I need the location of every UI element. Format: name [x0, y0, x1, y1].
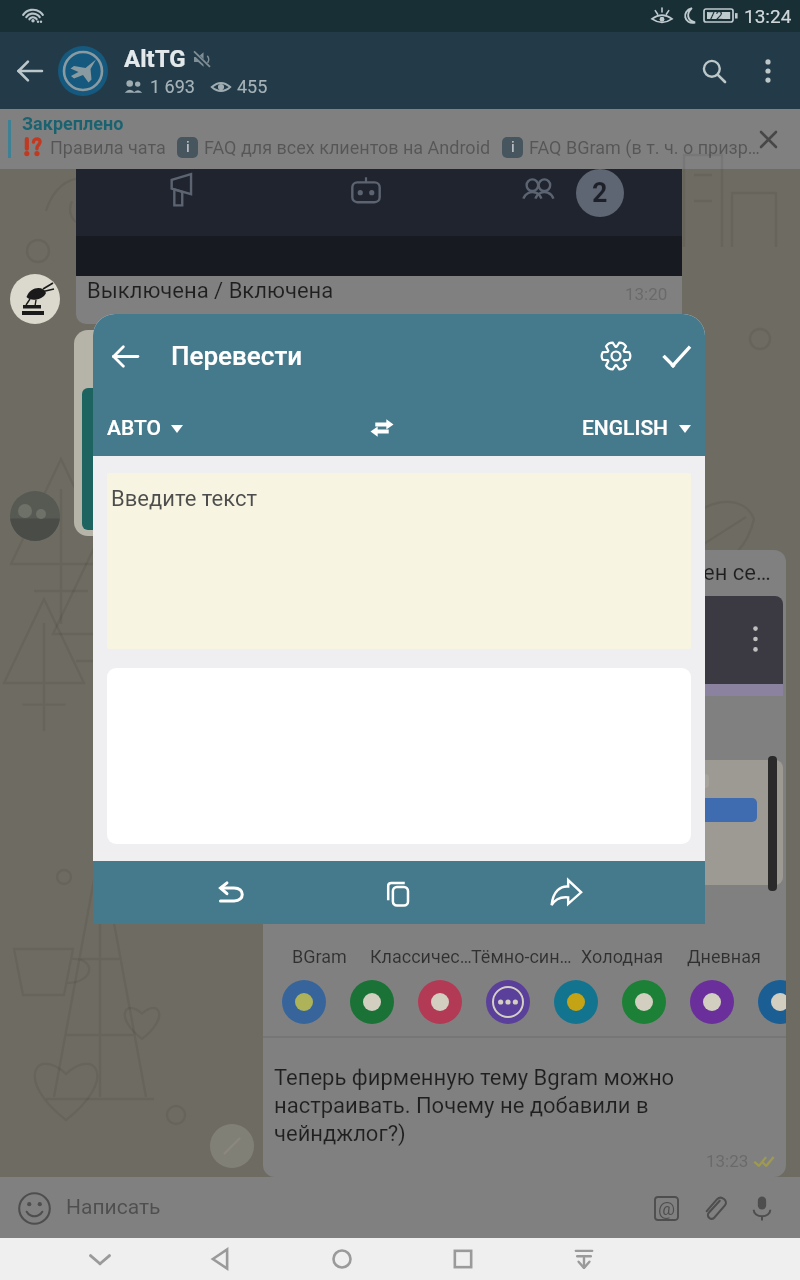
button[interactable]: Settings [592, 332, 640, 380]
button[interactable]: Collapse [523, 1238, 644, 1280]
staticText: 13:23 [706, 1151, 749, 1171]
staticText: AltTG [124, 45, 186, 73]
staticText: Закреплено [22, 113, 124, 134]
button[interactable]: Recents [402, 1238, 523, 1280]
staticText: i [186, 138, 190, 156]
button[interactable]: Back [160, 1238, 281, 1280]
button[interactable]: ENGLISH [582, 416, 691, 441]
staticText: FAQ BGram (в т. ч. о призр… [529, 137, 760, 158]
staticText: Тёмно-син… [471, 946, 572, 967]
staticText: 13:24 [744, 5, 792, 27]
button[interactable]: More options [746, 49, 790, 93]
staticText: FAQ для всех клиентов на Android [204, 137, 491, 158]
button[interactable]: Search [690, 47, 738, 95]
button[interactable]: Mention [646, 1188, 686, 1228]
button[interactable]: Back [12, 53, 48, 89]
staticText: Правила чата [50, 137, 166, 158]
staticText: АВТО [107, 416, 161, 441]
staticText: Классичес… [370, 946, 471, 967]
staticText: Теперь фирменную тему Bgram можно настра… [274, 1068, 675, 1147]
button[interactable]: Hide keyboard [39, 1238, 160, 1280]
button[interactable]: Введите текст [107, 473, 691, 649]
staticText: 455 [237, 76, 268, 97]
button[interactable]: Done [652, 332, 700, 380]
staticText: Дневная [687, 946, 761, 967]
staticText: 2 [592, 177, 608, 209]
button[interactable]: Back [102, 333, 148, 379]
staticText: @ [658, 1197, 676, 1219]
button[interactable]: Attach [694, 1188, 734, 1228]
staticText: Перевести [171, 341, 303, 371]
staticText: 13:20 [625, 284, 668, 304]
button[interactable]: Share [482, 861, 649, 924]
button[interactable]: Swap languages [360, 406, 404, 450]
staticText: i [511, 138, 515, 156]
staticText: Введите текст [111, 486, 257, 512]
button[interactable]: Chat avatar [58, 46, 108, 96]
button[interactable]: Home [281, 1238, 402, 1280]
button[interactable]: Emoji [16, 1190, 52, 1226]
staticText: Холодная [581, 946, 664, 967]
staticText: …влен се… [663, 560, 771, 586]
button[interactable]: Voice message [742, 1188, 782, 1228]
staticText: 72 [708, 8, 723, 23]
button[interactable]: Undo [148, 861, 315, 924]
staticText: Написать [66, 1195, 161, 1220]
staticText: BGram [292, 946, 347, 967]
staticText: 1 693 [150, 76, 195, 97]
staticText: ENGLISH [582, 416, 669, 441]
button[interactable]: Close pinned [750, 121, 786, 157]
staticText: Выключена / Включена [87, 278, 334, 304]
button[interactable]: Copy [315, 861, 482, 924]
button[interactable]: АВТО [107, 416, 183, 441]
